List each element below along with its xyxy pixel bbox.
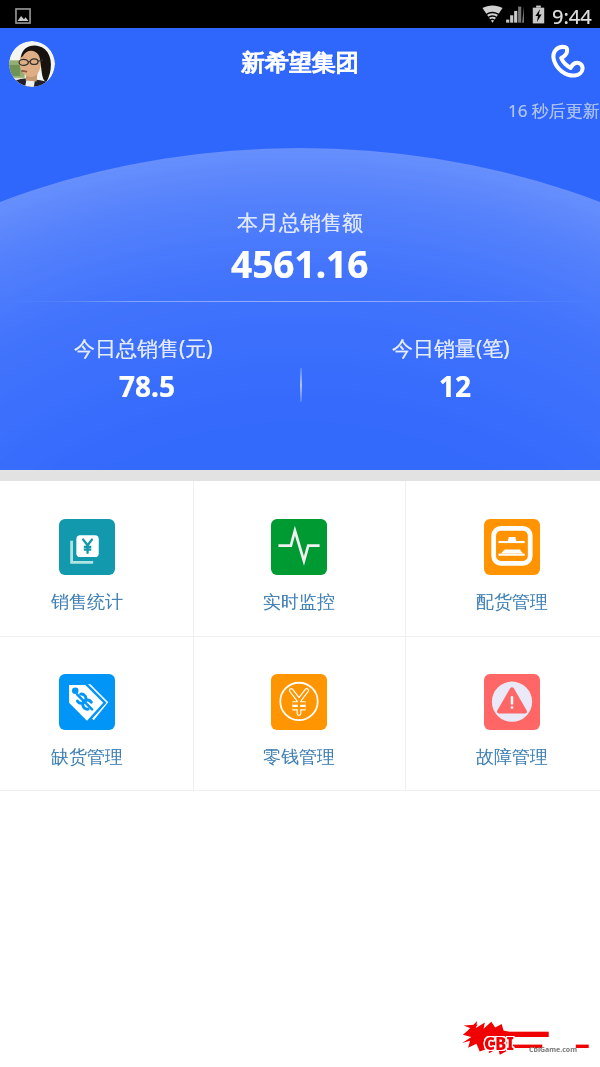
- button[interactable]: 零钱管理: [227, 636, 371, 791]
- staticText: CBI: [484, 1031, 514, 1054]
- staticText: 本月总销售额: [237, 210, 363, 236]
- button[interactable]: 缺货管理: [15, 636, 159, 791]
- button[interactable]: 配货管理: [440, 481, 584, 636]
- staticText: CbiGame.com: [529, 1045, 578, 1055]
- staticText: CBI: [484, 1032, 514, 1055]
- staticText: 零钱管理: [263, 746, 335, 769]
- staticText: CBI: [483, 1032, 513, 1055]
- staticText: 12: [439, 367, 472, 405]
- staticText: CBI: [483, 1031, 513, 1054]
- button[interactable]: 故障管理: [440, 636, 584, 791]
- staticText: CBI: [483, 1033, 513, 1056]
- staticText: CBI: [485, 1031, 515, 1054]
- staticText: 实时监控: [263, 591, 335, 614]
- button[interactable]: Call: [543, 36, 591, 84]
- staticText: 78.5: [119, 367, 175, 405]
- staticText: CBI: [484, 1033, 514, 1056]
- staticText: 缺货管理: [51, 746, 123, 769]
- button[interactable]: Profile: [9, 41, 55, 87]
- staticText: CBI: [485, 1033, 515, 1056]
- staticText: 故障管理: [476, 746, 548, 769]
- staticText: 16 秒后更新: [508, 99, 600, 122]
- staticText: 4561.16: [231, 238, 369, 288]
- staticText: 今日销量(笔): [392, 334, 510, 363]
- staticText: 9:44: [552, 3, 592, 30]
- staticText: 新希望集团: [241, 48, 359, 78]
- button[interactable]: 实时监控: [227, 481, 371, 636]
- staticText: 今日总销售(元): [74, 334, 213, 363]
- staticText: 配货管理: [476, 591, 548, 614]
- staticText: 销售统计: [51, 591, 123, 614]
- staticText: CBI: [485, 1032, 515, 1055]
- button[interactable]: 销售统计: [15, 481, 159, 636]
